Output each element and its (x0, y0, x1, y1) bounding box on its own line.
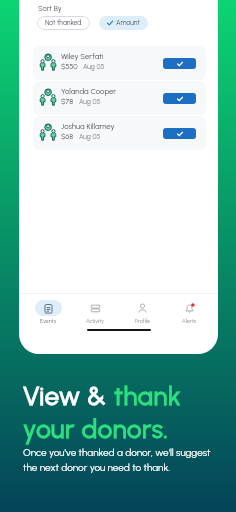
staticText: $550 (61, 62, 78, 71)
staticText: thank (114, 381, 182, 412)
staticText: Alerts (182, 318, 197, 325)
staticText: the next donor you need to thank. (23, 461, 171, 473)
button[interactable]: Amount (99, 16, 148, 30)
staticText: Sort By (38, 4, 62, 13)
staticText: Amount (116, 19, 140, 27)
button[interactable]: Not thanked (37, 16, 90, 30)
staticText: View & (23, 381, 114, 412)
button[interactable]: Wiley Serfati (33, 46, 206, 80)
staticText: Aug 05 (83, 63, 105, 71)
staticText: Yolanda Cooper (61, 87, 117, 96)
staticText: Activity (86, 318, 104, 325)
staticText: Not thanked (45, 19, 82, 27)
button[interactable]: Activity (77, 294, 113, 325)
staticText: your donors. (23, 414, 169, 445)
staticText: $68 (61, 132, 74, 141)
staticText: Aug 05 (79, 133, 101, 141)
button[interactable]: Thank donor (163, 58, 196, 69)
staticText: Aug 05 (79, 98, 101, 106)
staticText: Profile (135, 318, 150, 325)
staticText: $78 (61, 97, 74, 106)
staticText: Wiley Serfati (61, 52, 104, 61)
staticText: Once you've thanked a donor, we'll sugge… (23, 446, 211, 458)
button[interactable]: Thank donor (163, 93, 196, 104)
staticText: Events (40, 318, 57, 325)
button[interactable]: Yolanda Cooper (33, 81, 206, 115)
staticText: Joshua Killarney (61, 122, 115, 131)
button[interactable]: Joshua Killarney (33, 116, 206, 150)
button[interactable]: Profile (124, 294, 160, 325)
button[interactable]: Events (30, 294, 66, 325)
button[interactable]: Thank donor (163, 128, 196, 139)
button[interactable]: Alerts (171, 294, 207, 325)
